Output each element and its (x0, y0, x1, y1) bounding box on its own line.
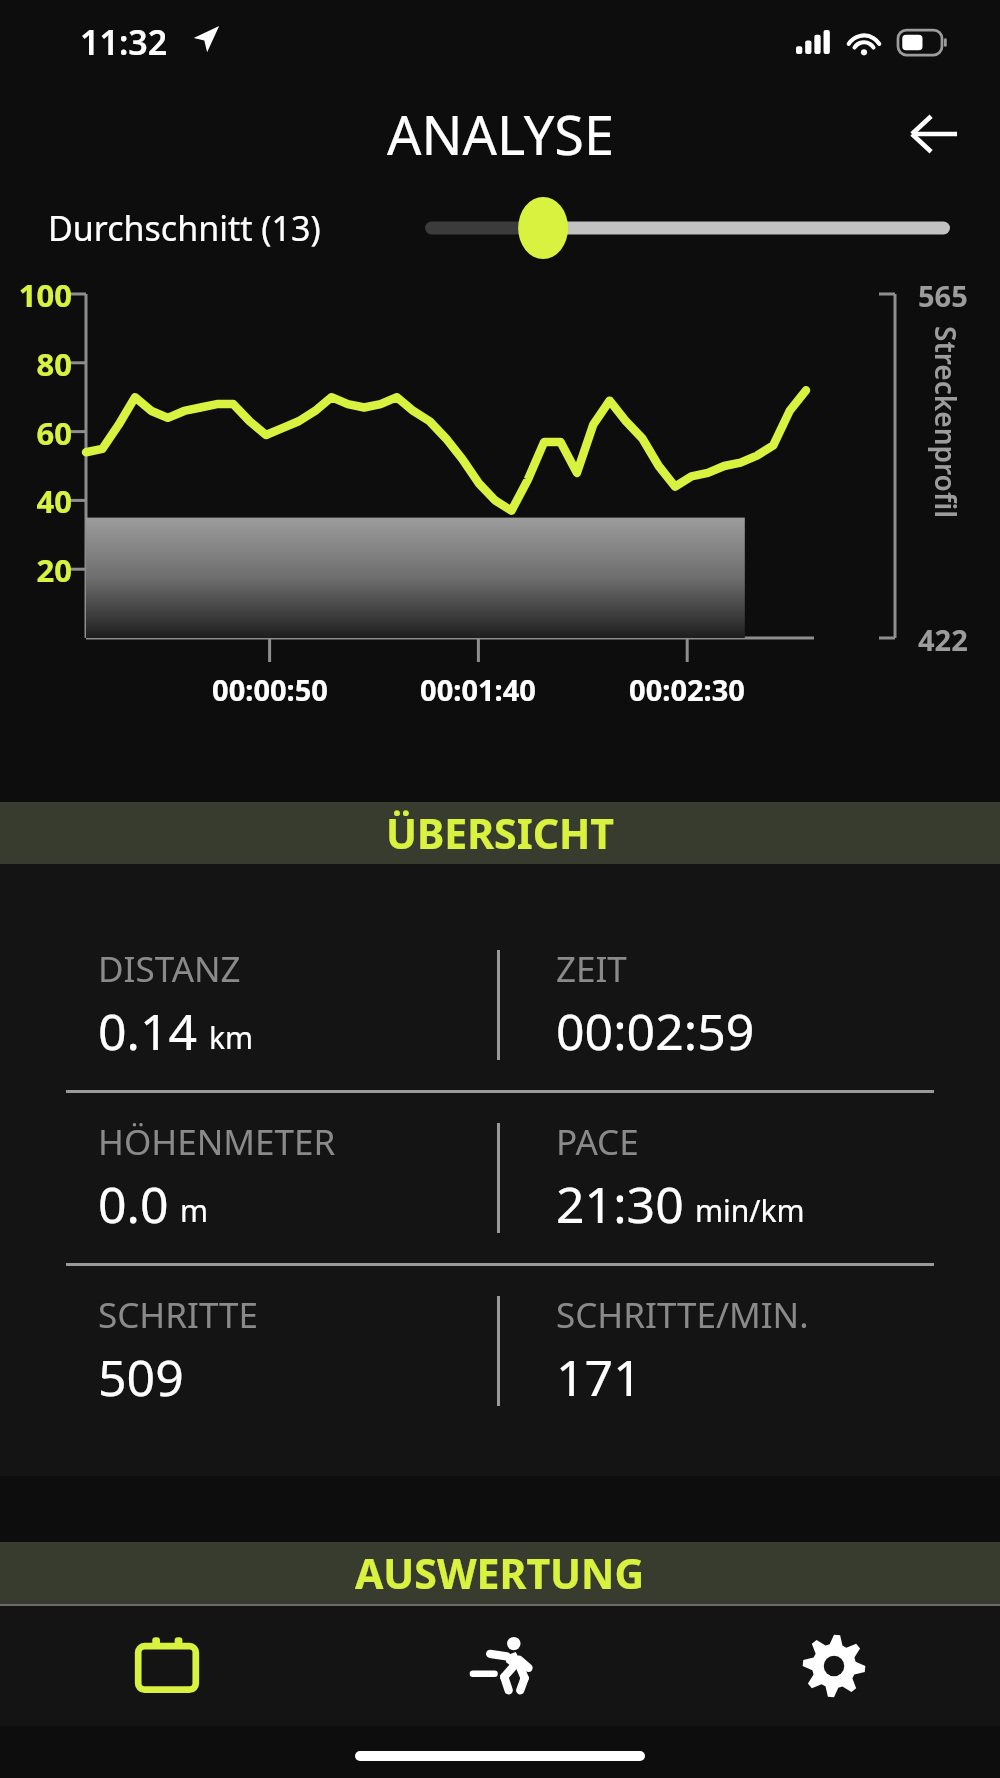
staticText: 40 (12, 480, 72, 522)
staticText: 422 (918, 620, 968, 659)
staticText: 80 (12, 343, 72, 385)
staticText: min/km (695, 1190, 805, 1231)
button[interactable]: Zurück (894, 94, 974, 174)
staticText: SCHRITTE/MIN. (556, 1291, 809, 1339)
staticText: 00:02:59 (556, 997, 755, 1065)
staticText: km (209, 1017, 254, 1058)
button[interactable]: Einstellungen (667, 1606, 1000, 1726)
staticText: 11:32 (80, 19, 168, 65)
staticText: Durchschnitt (13) (48, 205, 321, 251)
staticText: SCHRITTE (98, 1291, 258, 1339)
staticText: HÖHENMETER (98, 1118, 336, 1166)
button[interactable]: Kalender (0, 1606, 334, 1726)
staticText: 565 (918, 276, 968, 315)
staticText: 00:02:30 (602, 670, 772, 709)
staticText: 00:00:50 (185, 670, 355, 709)
staticText: Streckenprofil (927, 326, 965, 519)
staticText: 00:01:40 (393, 670, 563, 709)
staticText: DISTANZ (98, 945, 241, 993)
staticText: AUSWERTUNG (355, 1545, 645, 1601)
staticText: 171 (556, 1343, 642, 1411)
staticText: PACE (556, 1118, 639, 1166)
staticText: 100 (12, 274, 72, 316)
staticText: 509 (98, 1343, 184, 1411)
staticText: 0.0 (98, 1170, 169, 1238)
button[interactable]: SCHRITTE (0, 1266, 1000, 1436)
staticText: 60 (12, 412, 72, 454)
staticText: 21:30 (556, 1170, 684, 1238)
button[interactable]: DISTANZ (0, 920, 1000, 1090)
staticText: 0.14 (98, 997, 198, 1065)
button[interactable]: Glättung (425, 195, 950, 261)
button[interactable]: Aktivität (334, 1606, 667, 1726)
staticText: 20 (12, 549, 72, 591)
button[interactable]: HÖHENMETER (0, 1093, 1000, 1263)
staticText: m (180, 1190, 209, 1231)
staticText: ZEIT (556, 945, 627, 993)
staticText: ANALYSE (387, 97, 614, 171)
staticText: ÜBERSICHT (386, 805, 615, 861)
